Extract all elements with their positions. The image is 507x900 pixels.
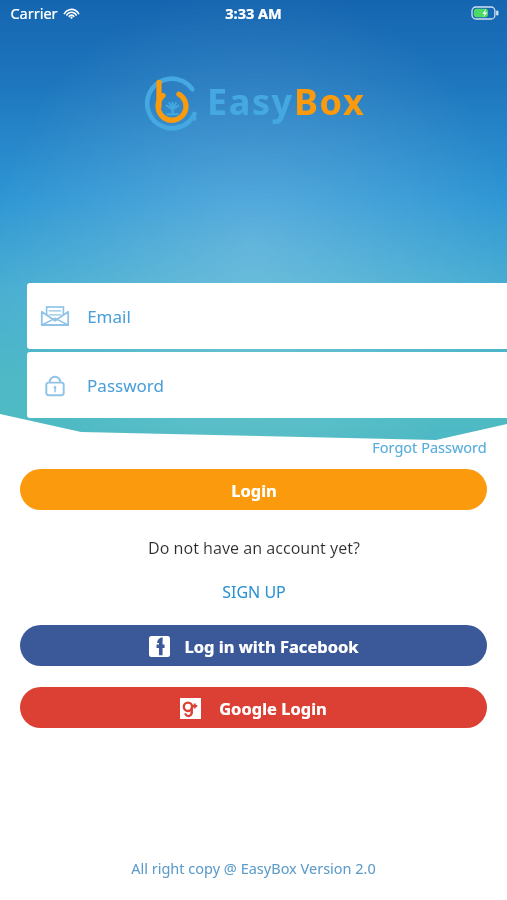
button[interactable]: Log in with Facebook [20, 625, 487, 666]
staticText: Email [87, 305, 131, 328]
staticText: All right copy @ EasyBox Version 2.0 [131, 858, 376, 878]
staticText: SIGN UP [222, 581, 286, 603]
button[interactable]: Forgot Password [352, 433, 507, 461]
button[interactable]: SIGN UP [208, 577, 300, 607]
staticText: Easy [207, 77, 294, 126]
staticText: 3:33 AM [225, 3, 282, 23]
staticText: Login [231, 479, 277, 501]
staticText: Google Login [219, 697, 327, 719]
button[interactable]: Email [27, 283, 507, 349]
staticText: Box [294, 77, 366, 126]
staticText: Log in with Facebook [184, 635, 359, 657]
staticText: Carrier [10, 3, 58, 23]
staticText: Forgot Password [372, 437, 487, 457]
button[interactable]: Google Login [20, 687, 487, 728]
button[interactable]: Password [27, 352, 507, 418]
staticText: Password [87, 374, 164, 397]
staticText: Do not have an account yet? [148, 537, 360, 559]
button[interactable]: Login [20, 469, 487, 510]
